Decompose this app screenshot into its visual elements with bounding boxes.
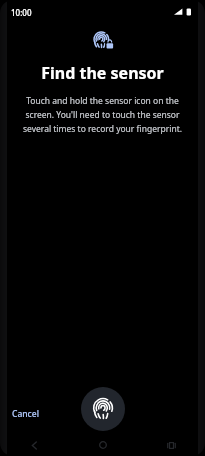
button[interactable]: Recent apps: [137, 434, 205, 456]
button[interactable]: Home: [69, 434, 137, 456]
button[interactable]: Fingerprint sensor: [81, 387, 125, 431]
button[interactable]: Cancel: [6, 404, 45, 424]
staticText: 10:00: [11, 7, 32, 18]
button[interactable]: Back: [0, 434, 69, 456]
staticText: Find the sensor: [41, 62, 164, 84]
staticText: Cancel: [12, 408, 39, 420]
staticText: Touch and hold the sensor icon on the sc…: [16, 95, 189, 134]
